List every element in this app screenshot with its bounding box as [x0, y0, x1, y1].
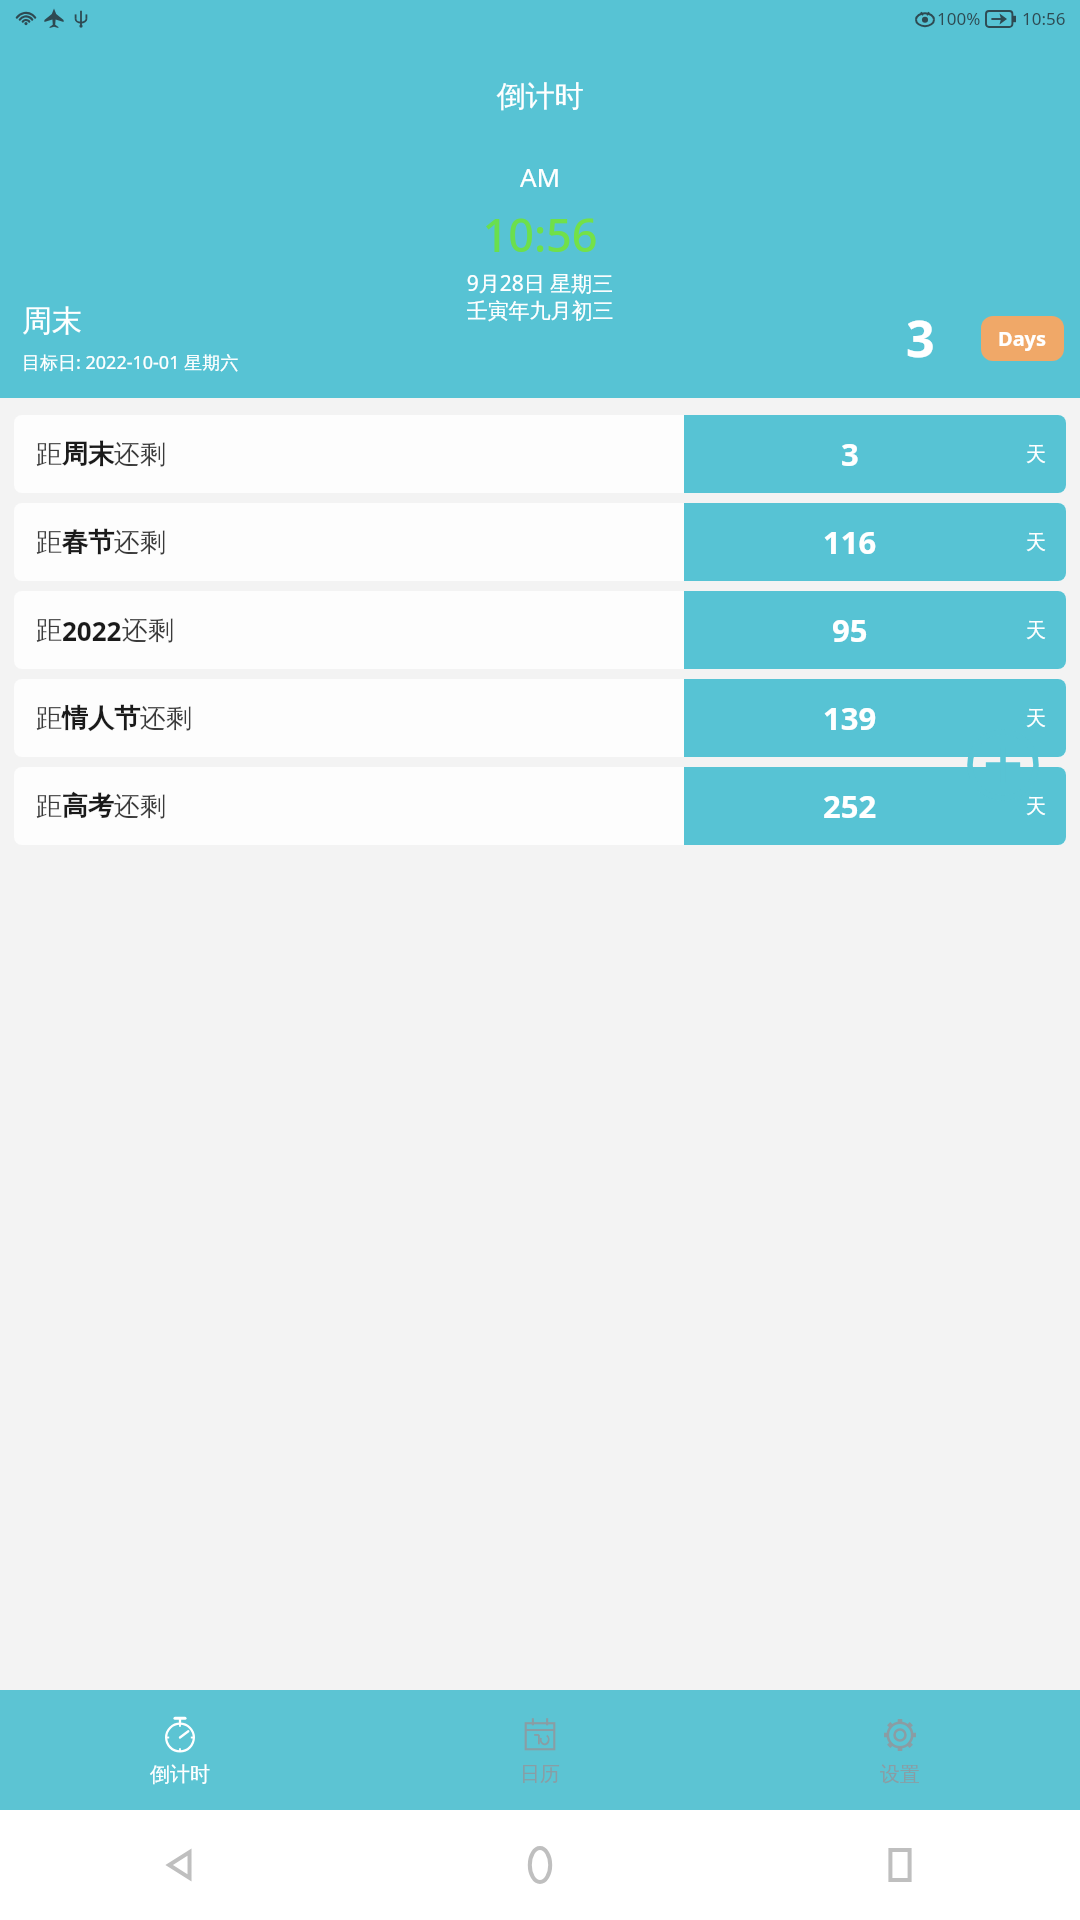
- staticText: 116: [823, 521, 877, 563]
- button[interactable]: 倒计时: [0, 1690, 360, 1810]
- staticText: 天: [1026, 618, 1046, 643]
- staticText: Days: [998, 325, 1047, 352]
- button[interactable]: 距: [14, 767, 1066, 845]
- staticText: 壬寅年九月初三: [0, 298, 1080, 324]
- staticText: 还剩: [122, 614, 174, 647]
- staticText: 3: [906, 304, 935, 372]
- staticText: 9月28日 星期三: [0, 269, 1080, 298]
- staticText: AM: [0, 159, 1080, 194]
- staticText: 还剩: [114, 438, 166, 471]
- staticText: 天: [1026, 706, 1046, 731]
- staticText: 设置: [880, 1762, 920, 1787]
- button[interactable]: 距: [14, 591, 1066, 669]
- staticText: 天: [1026, 794, 1046, 819]
- staticText: 春节: [62, 526, 114, 559]
- staticText: 100%: [937, 7, 981, 30]
- staticText: 天: [1026, 442, 1046, 467]
- button[interactable]: Days: [981, 316, 1064, 361]
- staticText: 天: [1026, 530, 1046, 555]
- button[interactable]: 距: [14, 503, 1066, 581]
- staticText: 还剩: [140, 702, 192, 735]
- staticText: 距: [36, 438, 62, 471]
- button[interactable]: Add countdown: [966, 728, 1040, 802]
- staticText: 日历: [520, 1762, 560, 1787]
- staticText: 倒计时: [0, 78, 1080, 115]
- other: Home: [523, 1848, 557, 1882]
- staticText: 情人节: [62, 702, 140, 735]
- button[interactable]: 设置: [720, 1690, 1080, 1810]
- staticText: 距: [36, 526, 62, 559]
- button[interactable]: 距: [14, 679, 1066, 757]
- staticText: 2022: [62, 613, 122, 648]
- staticText: 还剩: [114, 526, 166, 559]
- staticText: 倒计时: [150, 1762, 210, 1787]
- staticText: 高考: [62, 790, 114, 823]
- staticText: 95: [832, 609, 868, 651]
- staticText: 252: [823, 785, 877, 827]
- button[interactable]: 日历: [360, 1690, 720, 1810]
- staticText: 距: [36, 614, 62, 647]
- button[interactable]: 周末: [0, 278, 1080, 398]
- button[interactable]: 距: [14, 415, 1066, 493]
- other: Recents: [885, 1850, 915, 1880]
- staticText: 周末: [22, 302, 82, 340]
- staticText: 距: [36, 790, 62, 823]
- staticText: 还剩: [114, 790, 166, 823]
- staticText: 目标日: 2022-10-01 星期六: [22, 350, 239, 375]
- staticText: 10:56: [0, 204, 1080, 265]
- staticText: 10:56: [1022, 7, 1066, 30]
- staticText: 距: [36, 702, 62, 735]
- staticText: 周末: [62, 438, 114, 471]
- staticText: 3: [841, 433, 859, 475]
- other: Back: [163, 1848, 197, 1882]
- staticText: 139: [823, 697, 877, 739]
